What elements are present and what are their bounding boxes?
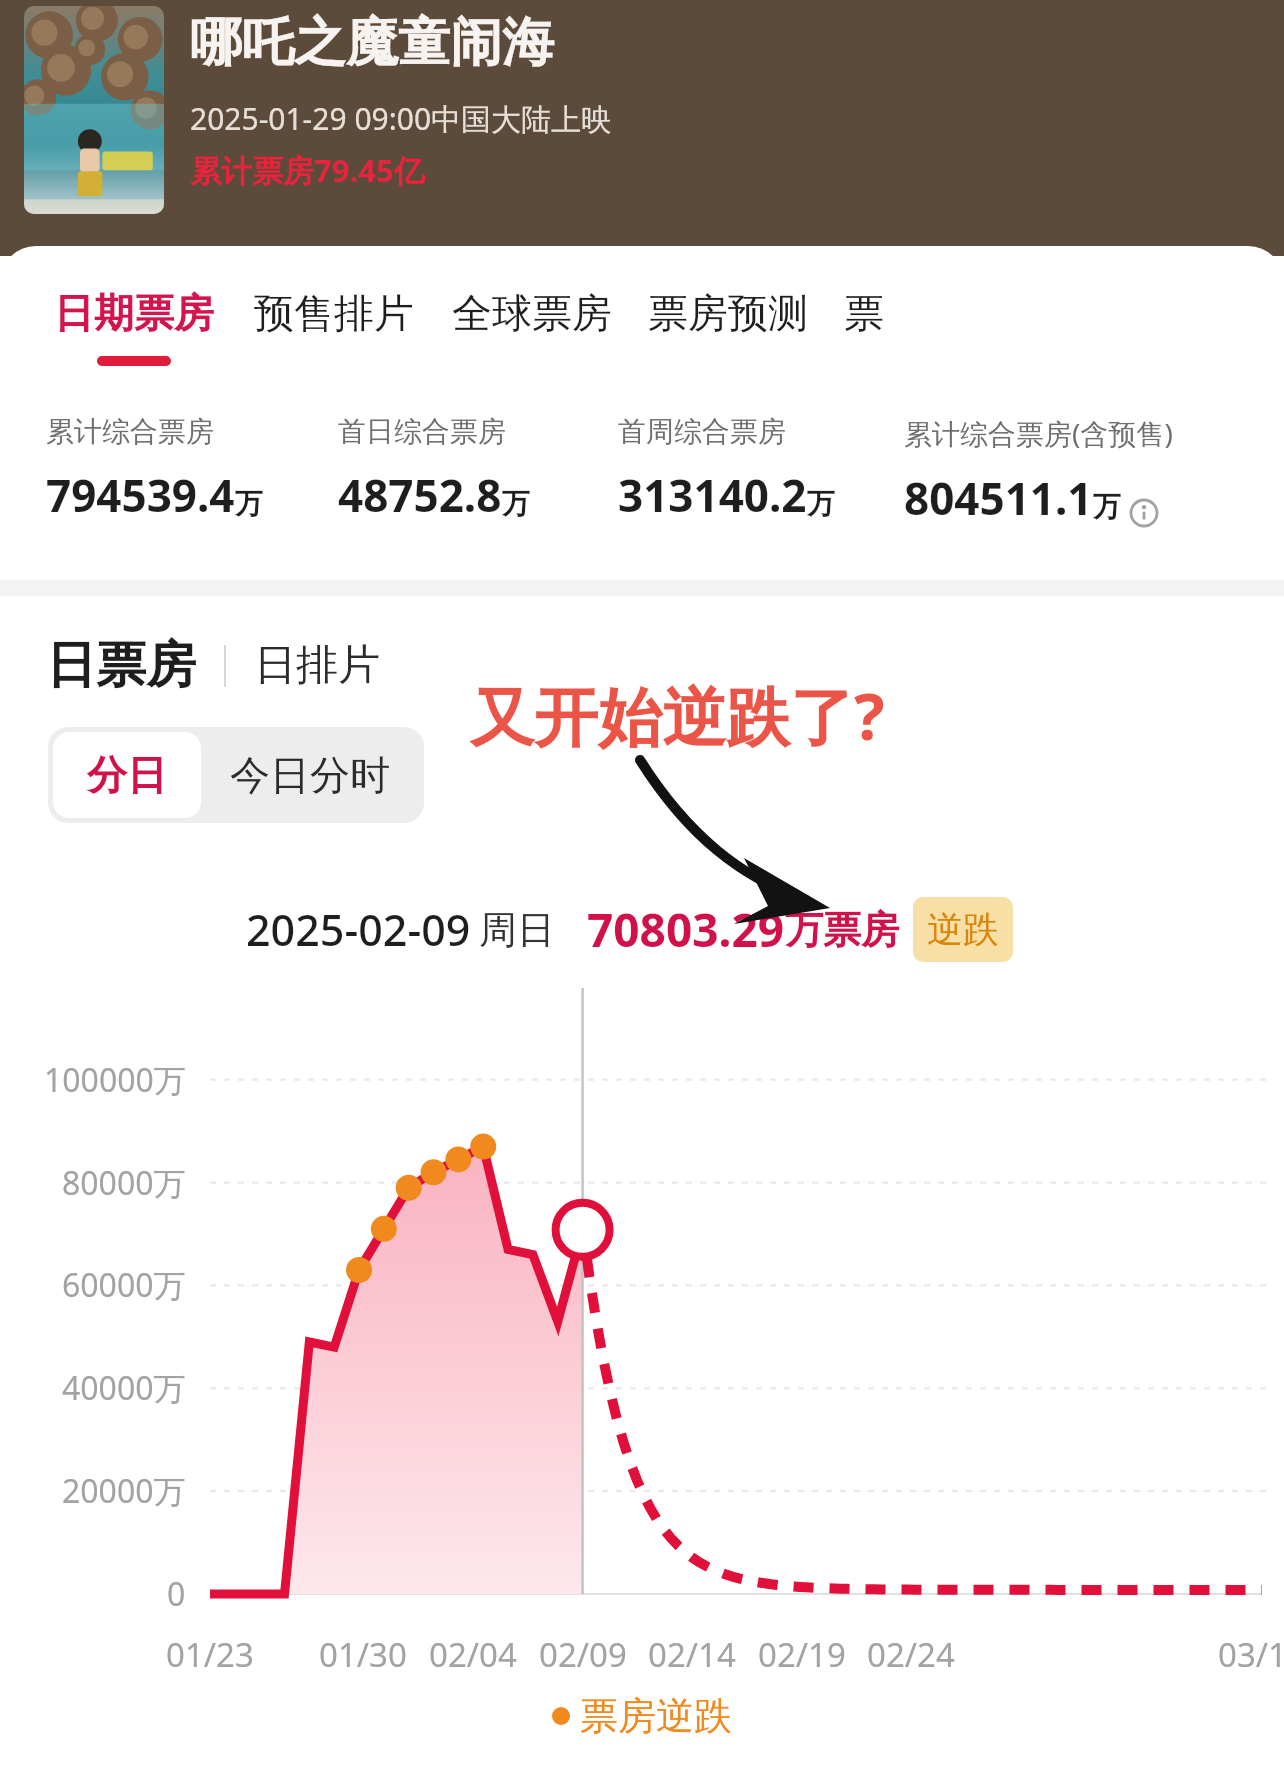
staticText: 累计综合票房(含预售): [904, 414, 1173, 452]
staticText: 万: [807, 486, 835, 521]
staticText: 万: [502, 486, 530, 521]
staticText: 20000万: [62, 1469, 186, 1513]
staticText: 逆跌: [927, 907, 999, 952]
staticText: 票房预测: [648, 288, 808, 338]
staticText: 周日: [479, 906, 555, 954]
staticText: 票: [844, 288, 884, 338]
staticText: 万: [1093, 489, 1121, 524]
staticText: 2025-01-29 09:00中国大陆上映: [190, 98, 612, 139]
button[interactable]: 日票房: [46, 634, 196, 697]
button[interactable]: 2025-02-09: [212, 875, 1041, 984]
button[interactable]: 票: [844, 288, 884, 338]
staticText: 80000万: [62, 1161, 186, 1205]
staticText: 02/04: [429, 1632, 517, 1677]
staticText: 日期票房: [54, 288, 214, 338]
staticText: 日票房: [46, 634, 196, 697]
staticText: 票房逆跌: [580, 1692, 732, 1740]
staticText: 全球票房: [452, 288, 612, 338]
staticText: 02/14: [648, 1632, 736, 1677]
button[interactable]: 累计综合票房: [46, 414, 338, 525]
staticText: 累计票房79.45亿: [190, 149, 425, 191]
button[interactable]: 票房逆跌: [552, 1692, 732, 1740]
staticText: 02/09: [539, 1632, 627, 1677]
staticText: 万: [235, 486, 263, 521]
staticText: 今日分时: [230, 750, 390, 800]
staticText: 02/19: [758, 1632, 846, 1677]
staticText: 万票房: [785, 906, 899, 954]
button[interactable]: 预售排片: [254, 288, 414, 356]
staticText: 02/24: [867, 1632, 955, 1677]
staticText: 40000万: [62, 1366, 186, 1410]
button[interactable]: 首日综合票房: [338, 414, 618, 525]
staticText: 313140.2: [618, 465, 807, 525]
button[interactable]: Movie poster: [24, 6, 164, 214]
staticText: 01/23: [166, 1632, 254, 1677]
staticText: 0: [167, 1572, 186, 1616]
staticText: 首周综合票房: [618, 414, 786, 449]
button[interactable]: 今日分时: [206, 727, 424, 823]
staticText: 804511.1: [904, 468, 1093, 528]
button[interactable]: 票房预测: [648, 288, 808, 356]
staticText: 794539.4: [46, 465, 235, 525]
staticText: 日排片: [254, 639, 380, 692]
staticText: 累计综合票房: [46, 414, 214, 449]
staticText: 首日综合票房: [338, 414, 506, 449]
staticText: 01/30: [319, 1632, 407, 1677]
button[interactable]: 日排片: [254, 639, 380, 692]
button[interactable]: 首周综合票房: [618, 414, 904, 525]
staticText: 预售排片: [254, 288, 414, 338]
button[interactable]: 分日: [53, 732, 201, 818]
staticText: 48752.8: [338, 465, 502, 525]
button[interactable]: 累计综合票房(含预售): [904, 414, 1276, 528]
staticText: 又开始逆跌了?: [470, 672, 885, 759]
button[interactable]: 日期票房: [54, 288, 214, 366]
staticText: 哪吒之魔童闹海: [190, 10, 554, 76]
button[interactable]: 全球票房: [452, 288, 612, 356]
staticText: 70803.29: [587, 898, 785, 961]
staticText: 60000万: [62, 1263, 186, 1307]
staticText: 分日: [87, 750, 167, 800]
staticText: 2025-02-09: [246, 900, 471, 959]
staticText: 100000万: [44, 1058, 186, 1102]
staticText: 03/12: [1218, 1632, 1284, 1677]
